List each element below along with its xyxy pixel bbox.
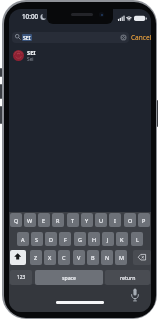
button[interactable]: P bbox=[138, 213, 150, 227]
staticText: 10:00 bbox=[22, 12, 39, 21]
staticText: X bbox=[48, 254, 52, 261]
staticText: F bbox=[64, 236, 67, 243]
button[interactable]: I bbox=[109, 213, 121, 227]
button[interactable]: Y bbox=[81, 213, 93, 227]
staticText: return bbox=[120, 274, 136, 281]
button[interactable]: K bbox=[116, 232, 128, 246]
staticText: C bbox=[62, 254, 66, 261]
button[interactable]: M bbox=[115, 250, 127, 265]
staticText: Y bbox=[85, 217, 89, 224]
staticText: space bbox=[62, 274, 77, 281]
button[interactable]: C bbox=[58, 250, 70, 265]
staticText: N bbox=[105, 254, 110, 261]
button[interactable]: return bbox=[105, 270, 150, 285]
staticText: J bbox=[107, 236, 109, 243]
button[interactable]: J bbox=[102, 232, 114, 246]
button[interactable]: N bbox=[101, 250, 113, 265]
button[interactable]: Cancel bbox=[131, 32, 151, 43]
staticText: K bbox=[120, 236, 124, 243]
button[interactable]: S bbox=[31, 232, 43, 246]
button[interactable]: 123 bbox=[10, 270, 32, 285]
staticText: O bbox=[128, 217, 133, 224]
staticText: B bbox=[91, 254, 95, 261]
staticText: U bbox=[99, 217, 104, 224]
button[interactable]: U bbox=[95, 213, 107, 227]
staticText: H bbox=[92, 236, 97, 243]
staticText: SEI bbox=[23, 34, 31, 41]
staticText: Z bbox=[34, 254, 38, 261]
button[interactable]: SEI bbox=[9, 47, 151, 66]
button[interactable]: H bbox=[88, 232, 100, 246]
staticText: R bbox=[56, 217, 60, 224]
staticText: P bbox=[142, 217, 146, 224]
staticText: Cancel bbox=[131, 33, 151, 42]
staticText: M bbox=[119, 254, 124, 261]
staticText: T bbox=[71, 217, 75, 224]
staticText: V bbox=[77, 254, 81, 261]
button[interactable]: W bbox=[24, 213, 36, 227]
button[interactable]: T bbox=[67, 213, 79, 227]
staticText: 123 bbox=[17, 274, 26, 281]
staticText: Q bbox=[14, 217, 19, 224]
staticText: E bbox=[42, 217, 46, 224]
staticText: G bbox=[78, 236, 83, 243]
button[interactable]: F bbox=[59, 232, 71, 246]
button[interactable]: Z bbox=[30, 250, 42, 265]
button[interactable]: B bbox=[87, 250, 99, 265]
button[interactable]: D bbox=[45, 232, 57, 246]
button[interactable]: R bbox=[52, 213, 64, 227]
button[interactable]: G bbox=[74, 232, 86, 246]
button[interactable]: SEI bbox=[12, 32, 129, 43]
button[interactable]: E bbox=[38, 213, 50, 227]
button[interactable] bbox=[133, 250, 151, 265]
staticText: Sei bbox=[27, 56, 34, 63]
staticText: I bbox=[114, 217, 116, 224]
button[interactable]: Q bbox=[10, 213, 22, 227]
staticText: S bbox=[35, 236, 39, 243]
button[interactable]: V bbox=[73, 250, 85, 265]
button[interactable]: A bbox=[17, 232, 29, 246]
staticText: D bbox=[49, 236, 54, 243]
staticText: L bbox=[136, 236, 139, 243]
staticText: W bbox=[27, 217, 33, 224]
staticText: A bbox=[21, 236, 25, 243]
button[interactable]: X bbox=[44, 250, 56, 265]
button[interactable]: O bbox=[124, 213, 136, 227]
staticText: SEI bbox=[27, 49, 36, 57]
button[interactable]: L bbox=[131, 232, 143, 246]
button[interactable]: space bbox=[35, 270, 103, 285]
button[interactable] bbox=[10, 250, 26, 265]
